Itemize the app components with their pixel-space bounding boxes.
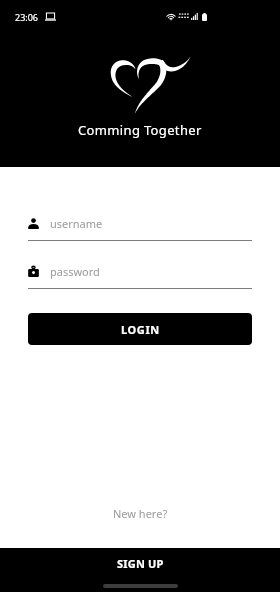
button[interactable]: Password	[28, 264, 252, 289]
other: Password	[28, 266, 39, 277]
staticText: Comming Together	[78, 121, 202, 139]
button[interactable]: User	[28, 216, 252, 241]
other: Home	[103, 584, 178, 588]
button[interactable]: LOGIN	[28, 313, 252, 345]
staticText: New here?	[113, 506, 168, 521]
staticText: password	[50, 264, 100, 279]
staticText: username	[50, 216, 103, 231]
staticText: LOGIN	[121, 322, 160, 337]
button[interactable]: New here?	[113, 506, 168, 521]
staticText: SIGN UP	[117, 556, 164, 571]
other: User	[28, 218, 39, 229]
button[interactable]: SIGN UP	[0, 548, 280, 592]
staticText: 23:06	[15, 11, 39, 23]
